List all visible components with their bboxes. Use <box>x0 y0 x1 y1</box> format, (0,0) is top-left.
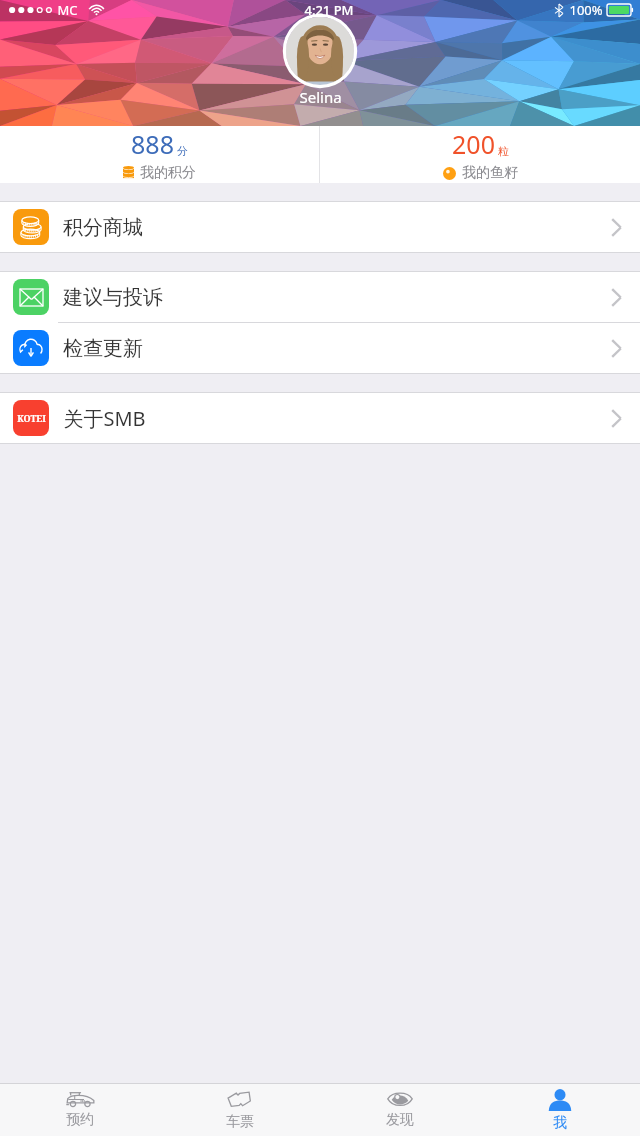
staticText: 关于SMB <box>63 405 146 432</box>
staticText: 200 <box>452 127 495 161</box>
button[interactable]: 检查更新 <box>0 323 640 373</box>
staticText: 发现 <box>386 1111 414 1129</box>
button[interactable]: Profile photo <box>286 17 354 85</box>
staticText: 我的积分 <box>140 164 196 182</box>
staticText: 预约 <box>66 1111 94 1129</box>
button[interactable]: 预约 <box>0 1084 160 1136</box>
staticText: 积分商城 <box>63 215 143 240</box>
button[interactable]: 888 <box>0 126 319 183</box>
button[interactable]: 200 <box>320 126 640 183</box>
staticText: 我 <box>553 1114 567 1132</box>
staticText: 车票 <box>226 1113 254 1131</box>
staticText: 建议与投诉 <box>63 285 163 310</box>
staticText: 4:21 PM <box>304 1 354 19</box>
staticText: KOTEI <box>17 412 46 424</box>
button[interactable]: 车票 <box>160 1084 320 1136</box>
staticText: 888 <box>131 127 174 161</box>
button[interactable]: 积分商城 <box>0 202 640 252</box>
button[interactable]: 发现 <box>320 1084 480 1136</box>
staticText: 粒 <box>498 144 509 158</box>
staticText: 分 <box>177 144 188 158</box>
staticText: MC <box>57 1 78 19</box>
button[interactable]: 我 <box>480 1084 640 1136</box>
staticText: 100% <box>569 1 603 19</box>
staticText: 我的鱼籽 <box>462 164 518 182</box>
staticText: Selina <box>299 87 342 107</box>
button[interactable]: 建议与投诉 <box>0 272 640 322</box>
staticText: 检查更新 <box>63 336 143 361</box>
button[interactable]: KOTEI <box>0 393 640 443</box>
